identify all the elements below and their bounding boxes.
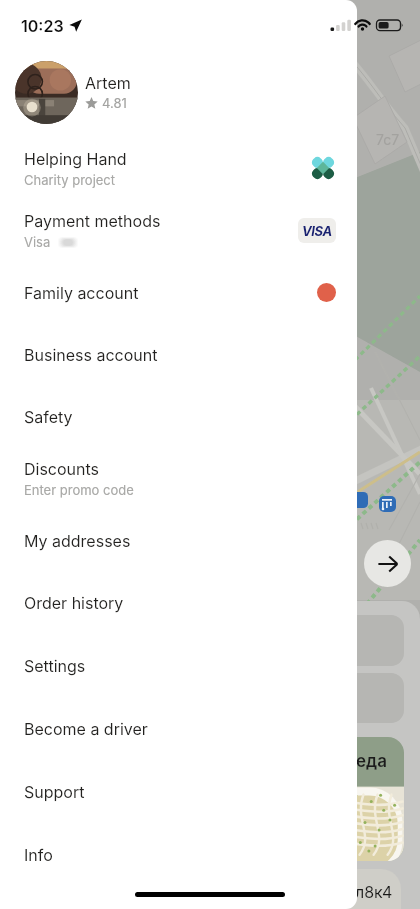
button[interactable] [326,869,401,909]
staticText: VISA [302,223,332,239]
staticText: Artem [85,73,131,92]
button[interactable]: Payment methods [0,199,357,261]
staticText: Support [24,782,85,801]
staticText: 7с7 [376,131,400,148]
staticText: My addresses [24,531,131,550]
button[interactable]: Safety [0,385,357,447]
staticText: Safety [24,407,73,426]
button[interactable]: Info [0,823,357,885]
staticText: Become a driver [24,719,148,738]
button[interactable]: Shortcut [330,615,404,666]
button[interactable]: Open [364,540,411,587]
staticText: Discounts [24,459,100,478]
button[interactable]: еда [326,737,404,861]
button[interactable]: Order history [0,571,357,633]
staticText: Family account [24,283,139,302]
staticText: еда [356,751,387,772]
button[interactable]: Become a driver [0,697,357,759]
staticText: Info [24,845,53,864]
button[interactable]: Business account [0,323,357,385]
staticText: Helping Hand [24,149,127,168]
staticText: Order history [24,593,124,612]
staticText: Charity project [24,172,116,188]
button[interactable]: Family account [0,261,357,323]
button[interactable]: Settings [0,634,357,696]
staticText: 10:23 [21,16,64,35]
staticText: Settings [24,656,86,675]
staticText: Payment methods [24,211,161,230]
staticText: Enter promo code [24,482,134,498]
button[interactable]: My addresses [0,509,357,571]
button[interactable]: Artem [15,60,357,124]
staticText: 4.81 [102,95,127,111]
staticText: Visa [24,234,51,250]
button[interactable]: Support [0,760,357,822]
button[interactable]: Shortcut [330,673,404,723]
button[interactable]: Helping Hand [0,137,357,199]
staticText: л8к4 [355,882,393,901]
staticText: Business account [24,345,158,364]
other: Helping Hand [310,155,336,181]
button[interactable]: Discounts [0,447,357,509]
